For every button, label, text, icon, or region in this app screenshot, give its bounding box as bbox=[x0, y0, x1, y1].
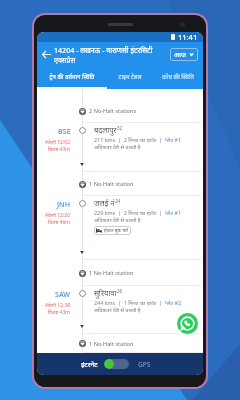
staticText: प्लैट #1 bbox=[165, 136, 182, 143]
staticText: विलंब 43m bbox=[48, 146, 71, 153]
button[interactable]: WhatsApp bbox=[177, 313, 198, 334]
staticText: 11:41 bbox=[178, 32, 198, 42]
staticText: 1 No-Halt station bbox=[89, 180, 134, 188]
button[interactable]: 1 No-Halt station bbox=[37, 260, 203, 286]
button[interactable]: 1 No-Halt station bbox=[37, 172, 203, 196]
staticText: GPS bbox=[138, 360, 151, 369]
button[interactable]: टाइम टेबल bbox=[107, 67, 153, 87]
button[interactable]: कोच की स्थिति bbox=[153, 67, 203, 87]
staticText: 1 No-Halt station bbox=[89, 340, 134, 348]
staticText: ट्रेन की वर्तमान स्थिति bbox=[49, 73, 95, 81]
staticText: 26 bbox=[117, 288, 123, 294]
button[interactable]: JNH bbox=[37, 196, 203, 260]
staticText: 24 bbox=[115, 198, 121, 204]
staticText: एक्सप्रेस bbox=[54, 55, 76, 65]
staticText: जलई नं bbox=[94, 198, 115, 208]
button[interactable]: आज bbox=[170, 48, 198, 61]
staticText: आज bbox=[174, 50, 186, 59]
staticText: SAW bbox=[55, 289, 71, 299]
button[interactable]: BSE bbox=[37, 123, 203, 172]
button[interactable]: ट्रेन की वर्तमान स्थिति bbox=[37, 67, 107, 87]
button[interactable]: 1 No-Halt station bbox=[37, 334, 203, 353]
staticText: होटल बुक करें bbox=[104, 227, 129, 234]
button[interactable]: Internet toggle bbox=[104, 359, 129, 369]
staticText: टाइम टेबल bbox=[118, 73, 142, 81]
staticText: बदलापुर bbox=[94, 125, 117, 135]
staticText: 14204 - लखनऊ - वाराणसी इंटरसिटी bbox=[54, 45, 153, 55]
staticText: विलंब 43m bbox=[48, 309, 71, 316]
staticText: BSE bbox=[58, 126, 71, 136]
staticText: अधिकतर देरी से चलती है bbox=[94, 306, 141, 313]
staticText: रुकेगी 12:38 bbox=[45, 302, 71, 309]
staticText: कोच की स्थिति bbox=[162, 73, 194, 81]
staticText: 2 No-Halt stations bbox=[89, 107, 137, 115]
staticText: प्लैट #2 bbox=[165, 299, 182, 306]
staticText: अधिकतर देरी से चलती है bbox=[94, 143, 141, 150]
staticText: रुकेगी 12:20 bbox=[45, 212, 71, 219]
staticText: अधिकतर देरी से चलती है bbox=[94, 216, 141, 223]
staticText: इंटरनेट bbox=[81, 360, 98, 369]
button[interactable]: होटल बुक करें bbox=[94, 226, 131, 235]
staticText: JNH bbox=[57, 199, 71, 209]
button[interactable]: Back bbox=[40, 48, 53, 61]
staticText: विलंब 46m bbox=[48, 219, 71, 226]
staticText: 229 kms | 2 मिनट का हाल्ट | bbox=[94, 209, 165, 216]
staticText: 1 No-Halt station bbox=[89, 269, 134, 277]
staticText: प्लैट #1 bbox=[165, 209, 182, 216]
staticText: रुकेगी 12:02 bbox=[45, 139, 71, 146]
staticText: सुरियावा bbox=[94, 288, 117, 298]
staticText: 211 kms | 2 मिनट का हाल्ट | bbox=[94, 136, 165, 143]
staticText: 32 bbox=[117, 125, 123, 131]
button[interactable]: 2 No-Halt stations bbox=[37, 99, 203, 123]
button[interactable]: SAW bbox=[37, 286, 203, 334]
staticText: 244 kms | 1 मिनट का हाल्ट | bbox=[94, 299, 165, 306]
